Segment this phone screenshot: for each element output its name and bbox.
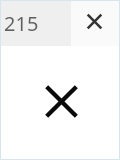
button[interactable]: Dismiss — [44, 84, 80, 120]
button[interactable]: 215 — [1, 1, 71, 46]
button[interactable]: Close — [79, 6, 110, 37]
staticText: 215 — [4, 10, 39, 37]
